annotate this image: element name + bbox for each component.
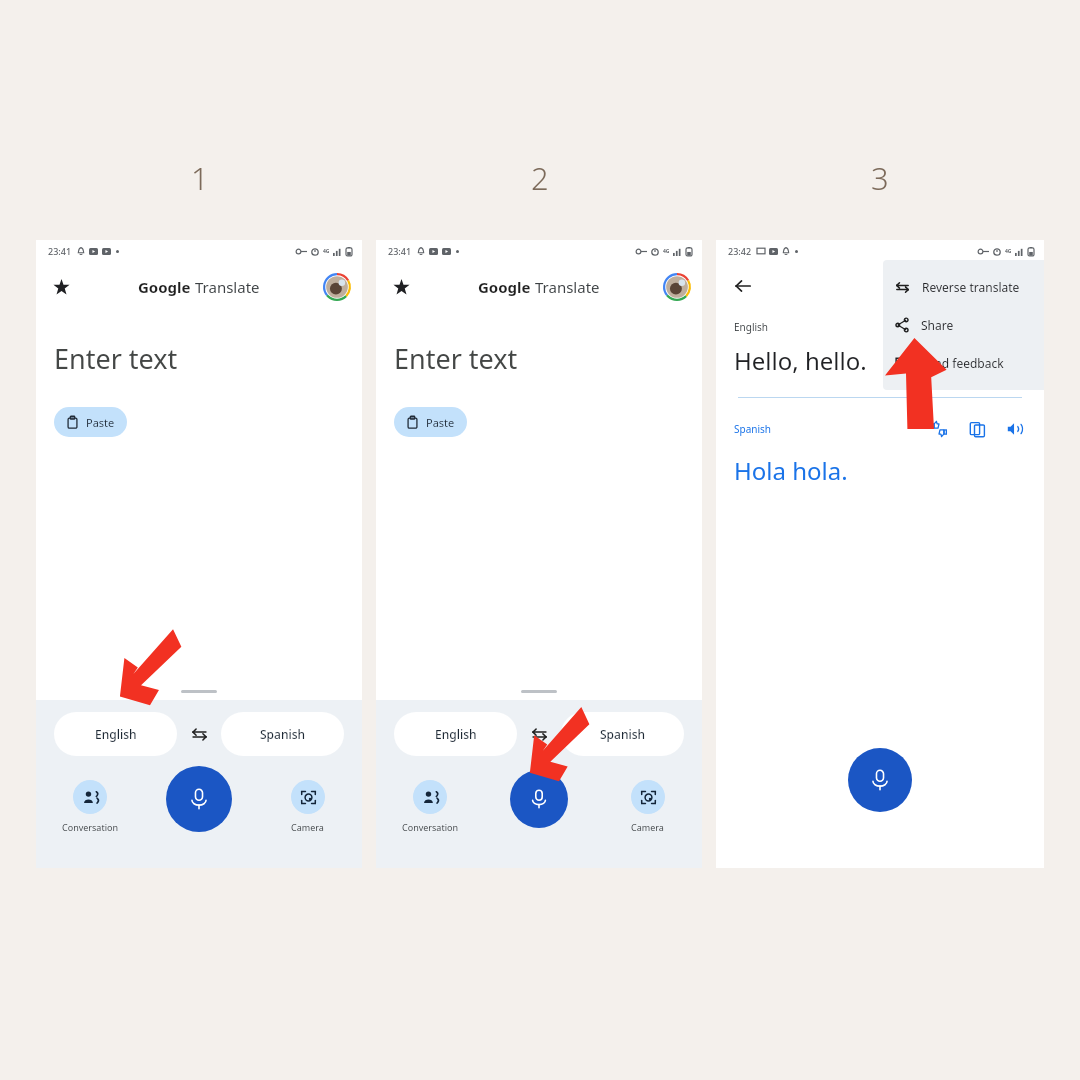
staticText: Send feedback	[921, 355, 1004, 371]
button[interactable]: Share	[883, 306, 1044, 344]
staticText: Google	[138, 277, 191, 297]
button[interactable]: Microphone	[166, 766, 232, 832]
staticText: 23:42	[728, 245, 752, 257]
button[interactable]: Copy	[964, 416, 990, 442]
button[interactable]: Spanish	[221, 712, 344, 756]
staticText: 1	[191, 157, 209, 199]
button[interactable]: Rate translation	[926, 416, 952, 442]
button[interactable]: Send feedback	[883, 344, 1044, 382]
staticText: Hola hola.	[734, 454, 848, 487]
button[interactable]: Conversation	[376, 770, 484, 833]
staticText: Translate	[535, 277, 600, 297]
button[interactable]: Swap languages	[517, 712, 561, 756]
staticText: Spanish	[260, 726, 306, 742]
staticText: Spanish	[600, 726, 646, 742]
staticText: Camera	[291, 821, 324, 833]
staticText: Enter text	[394, 340, 518, 377]
button[interactable]: Saved	[386, 272, 416, 302]
staticText: 2	[531, 157, 549, 199]
button[interactable]: Account	[662, 272, 692, 302]
staticText: Reverse translate	[922, 279, 1020, 295]
staticText: Conversation	[62, 821, 118, 833]
staticText: English	[734, 320, 769, 334]
button[interactable]: English	[394, 712, 517, 756]
staticText: Paste	[86, 415, 115, 430]
staticText: Share	[921, 317, 954, 333]
staticText: 4G	[323, 248, 330, 255]
staticText: Camera	[631, 821, 664, 833]
staticText: Spanish	[734, 422, 771, 436]
button[interactable]: Paste	[394, 407, 467, 437]
staticText: Hello, hello.	[734, 344, 867, 377]
button[interactable]: Microphone	[510, 770, 568, 828]
staticText: Google	[478, 277, 531, 297]
button[interactable]: Camera	[253, 766, 362, 833]
staticText: English	[95, 726, 137, 742]
button[interactable]: Spanish	[561, 712, 684, 756]
staticText: 23:41	[48, 245, 72, 257]
button[interactable]: Listen	[1002, 416, 1028, 442]
staticText: Enter text	[54, 340, 178, 377]
button[interactable]: Camera	[593, 770, 702, 833]
staticText: 4G	[1005, 248, 1012, 255]
staticText: 4G	[663, 248, 670, 255]
button[interactable]: Account	[322, 272, 352, 302]
button[interactable]: Swap languages	[177, 712, 221, 756]
button[interactable]: Paste	[54, 407, 127, 437]
staticText: 23:41	[388, 245, 412, 257]
button[interactable]: Back	[728, 271, 758, 301]
staticText: Translate	[195, 277, 260, 297]
button[interactable]: Microphone	[848, 748, 912, 812]
staticText: English	[435, 726, 477, 742]
staticText: Paste	[426, 415, 455, 430]
staticText: Conversation	[402, 821, 458, 833]
staticText: 3	[871, 157, 889, 199]
button[interactable]: Saved	[46, 272, 76, 302]
button[interactable]: Conversation	[36, 766, 144, 833]
button[interactable]: English	[54, 712, 177, 756]
button[interactable]: Reverse translate	[883, 268, 1044, 306]
